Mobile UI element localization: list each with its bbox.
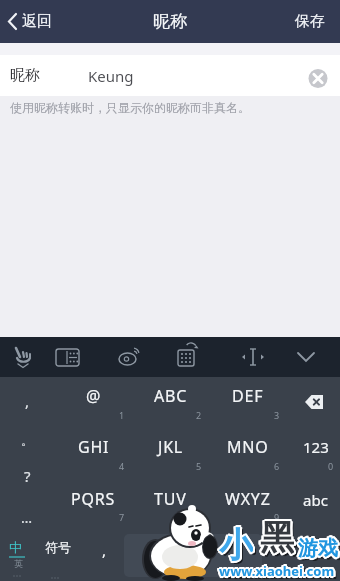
staticText: TUV [154,488,187,510]
button[interactable] [209,429,285,478]
staticText: 英 [14,558,23,569]
button[interactable] [168,337,224,377]
button[interactable] [56,337,112,377]
staticText: 黑 [259,517,293,559]
staticText: 符号 [45,539,71,555]
staticText: 游戏 [297,535,337,560]
button[interactable] [55,378,131,427]
staticText: 小 [217,524,251,566]
staticText: 1 [119,409,125,421]
staticText: JKL [158,436,184,458]
button[interactable] [112,337,168,377]
staticText: 6 [274,460,280,472]
staticText: 黑 [259,518,293,560]
button[interactable] [224,337,280,377]
staticText: ? [24,466,31,486]
staticText: 。 [21,433,33,448]
staticText: 黑 [260,518,294,560]
staticText: 小 [217,523,251,565]
staticText: www.xiaohei.com [219,564,335,580]
staticText: 2 [196,409,202,421]
button[interactable]: 中 [0,530,38,581]
button[interactable] [124,534,262,577]
staticText: abc [303,490,328,510]
staticText: www.xiaohei.com [217,561,333,577]
staticText: WXYZ [225,488,271,510]
button[interactable]: 。 [0,428,54,452]
staticText: 3 [274,409,280,421]
button[interactable] [280,337,336,377]
staticText: 保存 [295,12,325,31]
staticText: www.xiaohei.com [222,564,338,580]
staticText: 小 [222,527,256,569]
button[interactable] [132,480,208,529]
button[interactable] [132,378,208,427]
staticText: www.xiaohei.com [220,563,336,579]
button[interactable] [286,377,340,428]
staticText: 黑 [260,514,294,556]
staticText: 小 [221,524,255,566]
button[interactable] [132,429,208,478]
staticText: www.xiaohei.com [221,562,337,578]
staticText: 黑 [258,515,292,557]
button[interactable] [209,378,285,427]
staticText: 小 [220,522,254,564]
button[interactable]: 返回 [0,0,70,43]
staticText: 小 [219,522,253,564]
staticText: 7 [119,511,125,523]
staticText: 游戏 [297,537,337,562]
button[interactable]: 符号 [39,534,76,560]
button[interactable] [300,55,340,96]
staticText: 游戏 [299,535,339,560]
staticText: 黑 [262,519,296,561]
staticText: 小 [218,526,252,568]
staticText: 游戏 [300,539,340,564]
button[interactable]: 昵称 [0,55,340,96]
button[interactable]: 保存 [280,0,340,43]
staticText: 游戏 [299,537,339,562]
staticText: www.xiaohei.com [219,562,335,578]
staticText: ABC [154,385,188,407]
staticText: 昵称 [10,66,40,85]
staticText: 小 [222,526,256,568]
staticText: 4 [119,460,125,472]
staticText: 黑 [263,519,297,561]
staticText: 8 [196,511,202,523]
staticText: 黑 [261,515,295,557]
button[interactable]: , [0,389,54,413]
button[interactable]: ? [0,464,54,488]
staticText: 黑 [263,518,297,560]
staticText: 返回 [22,12,52,31]
button[interactable] [55,429,131,478]
button[interactable] [209,480,285,529]
staticText: 黑 [258,516,292,558]
staticText: , [25,391,30,411]
button[interactable] [55,480,131,529]
staticText: 黑 [262,517,296,559]
button[interactable]: 123 [289,434,340,460]
button[interactable]: … [0,505,54,529]
staticText: www.xiaohei.com [220,561,336,577]
staticText: Keung [88,66,134,86]
staticText: MNO [227,436,269,458]
staticText: 小 [221,525,255,567]
staticText: 昵称 [153,11,187,32]
staticText: 使用昵称转账时，只显示你的昵称而非真名。 [10,100,250,115]
staticText: 9 [274,511,280,523]
staticText: DEF [232,385,264,407]
staticText: www.xiaohei.com [219,560,335,576]
staticText: www.xiaohei.com [221,565,337,581]
staticText: , [102,540,107,560]
staticText: 小 [219,524,253,566]
staticText: @ [86,385,101,407]
staticText: 123 [303,437,329,457]
staticText: 小 [221,527,255,569]
staticText: 小 [220,523,254,565]
staticText: 小 [218,523,252,565]
staticText: PQRS [71,488,116,510]
button[interactable]: , [84,537,124,563]
button[interactable]: abc [288,487,340,513]
staticText: 游戏 [300,536,340,561]
staticText: 小 [220,525,254,567]
button[interactable] [0,337,56,377]
